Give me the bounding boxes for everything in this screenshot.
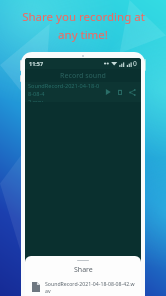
button[interactable]: Record sound — [25, 69, 141, 82]
staticText: 11:57 — [29, 60, 44, 67]
button[interactable]: Delete — [114, 86, 126, 98]
button[interactable]: Play — [102, 86, 114, 98]
staticText: 2.wav — [28, 98, 44, 102]
staticText: Record sound — [60, 71, 106, 81]
staticText: SoundRecord-2021-04-18-08-08-4 — [28, 82, 102, 98]
staticText: any time! — [58, 27, 108, 43]
button[interactable]: Share — [126, 86, 138, 98]
button[interactable]: SoundRecord-2021-04-18-08-08-42.wav — [25, 280, 141, 294]
staticText: Share you recording at — [22, 9, 145, 25]
staticText: SoundRecord-2021-04-18-08-08-42.wav — [45, 280, 135, 294]
staticText: Share — [74, 265, 93, 275]
button[interactable]: SoundRecord-2021-04-18-08-08-4 — [25, 82, 141, 102]
